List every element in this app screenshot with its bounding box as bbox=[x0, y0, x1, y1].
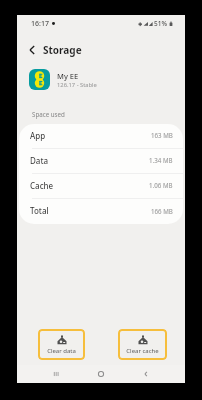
staticText: Clear data bbox=[47, 347, 76, 355]
button[interactable]: Clear data bbox=[38, 329, 85, 360]
staticText: 166 MB bbox=[151, 207, 173, 215]
button[interactable]: Back bbox=[22, 40, 42, 60]
button[interactable]: Data bbox=[19, 149, 183, 173]
button[interactable]: App bbox=[19, 124, 183, 148]
staticText: 126.17 - Stable bbox=[57, 81, 97, 89]
staticText: Space used bbox=[32, 110, 65, 118]
staticText: 1.34 MB bbox=[149, 156, 173, 164]
button[interactable]: Back bbox=[123, 365, 168, 383]
staticText: 51% bbox=[154, 19, 167, 28]
button[interactable]: Recents bbox=[34, 365, 78, 383]
staticText: 16:17 bbox=[31, 19, 49, 29]
button[interactable]: Clear cache bbox=[118, 329, 167, 360]
button[interactable]: Total bbox=[19, 199, 183, 224]
button[interactable]: My EE bbox=[17, 68, 185, 90]
staticText: 163 MB bbox=[151, 131, 173, 139]
staticText: App bbox=[30, 130, 46, 141]
staticText: Total bbox=[30, 205, 49, 216]
staticText: 1.06 MB bbox=[149, 181, 173, 189]
staticText: Clear cache bbox=[126, 347, 159, 355]
button[interactable]: Home bbox=[78, 365, 123, 383]
staticText: My EE bbox=[57, 71, 79, 81]
staticText: Data bbox=[30, 155, 49, 166]
staticText: Storage bbox=[43, 43, 82, 57]
button[interactable]: Cache bbox=[19, 174, 183, 198]
staticText: Cache bbox=[30, 180, 54, 191]
